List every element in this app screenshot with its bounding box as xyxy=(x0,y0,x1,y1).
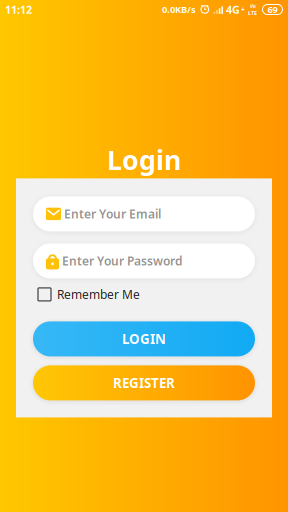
button[interactable]: LOGIN xyxy=(33,321,255,356)
staticText: LTE xyxy=(248,9,257,17)
staticText: Enter Your Password xyxy=(62,253,183,269)
staticText: REGISTER xyxy=(113,374,175,392)
button[interactable]: Enter Your Password xyxy=(33,243,255,278)
button[interactable]: Enter Your Email xyxy=(33,196,255,231)
button[interactable]: REGISTER xyxy=(33,365,255,400)
staticText: 11:12 xyxy=(5,2,32,17)
staticText: Vo xyxy=(249,2,255,9)
staticText: Enter Your Email xyxy=(64,206,161,222)
staticText: 4G xyxy=(226,2,240,17)
staticText: 0.0KB/s xyxy=(162,3,196,16)
staticText: + xyxy=(241,5,245,14)
button[interactable]: Remember Me xyxy=(33,287,255,301)
staticText: Login xyxy=(107,142,181,177)
staticText: Remember Me xyxy=(57,286,140,302)
staticText: 69 xyxy=(267,3,277,16)
staticText: LOGIN xyxy=(122,330,166,348)
